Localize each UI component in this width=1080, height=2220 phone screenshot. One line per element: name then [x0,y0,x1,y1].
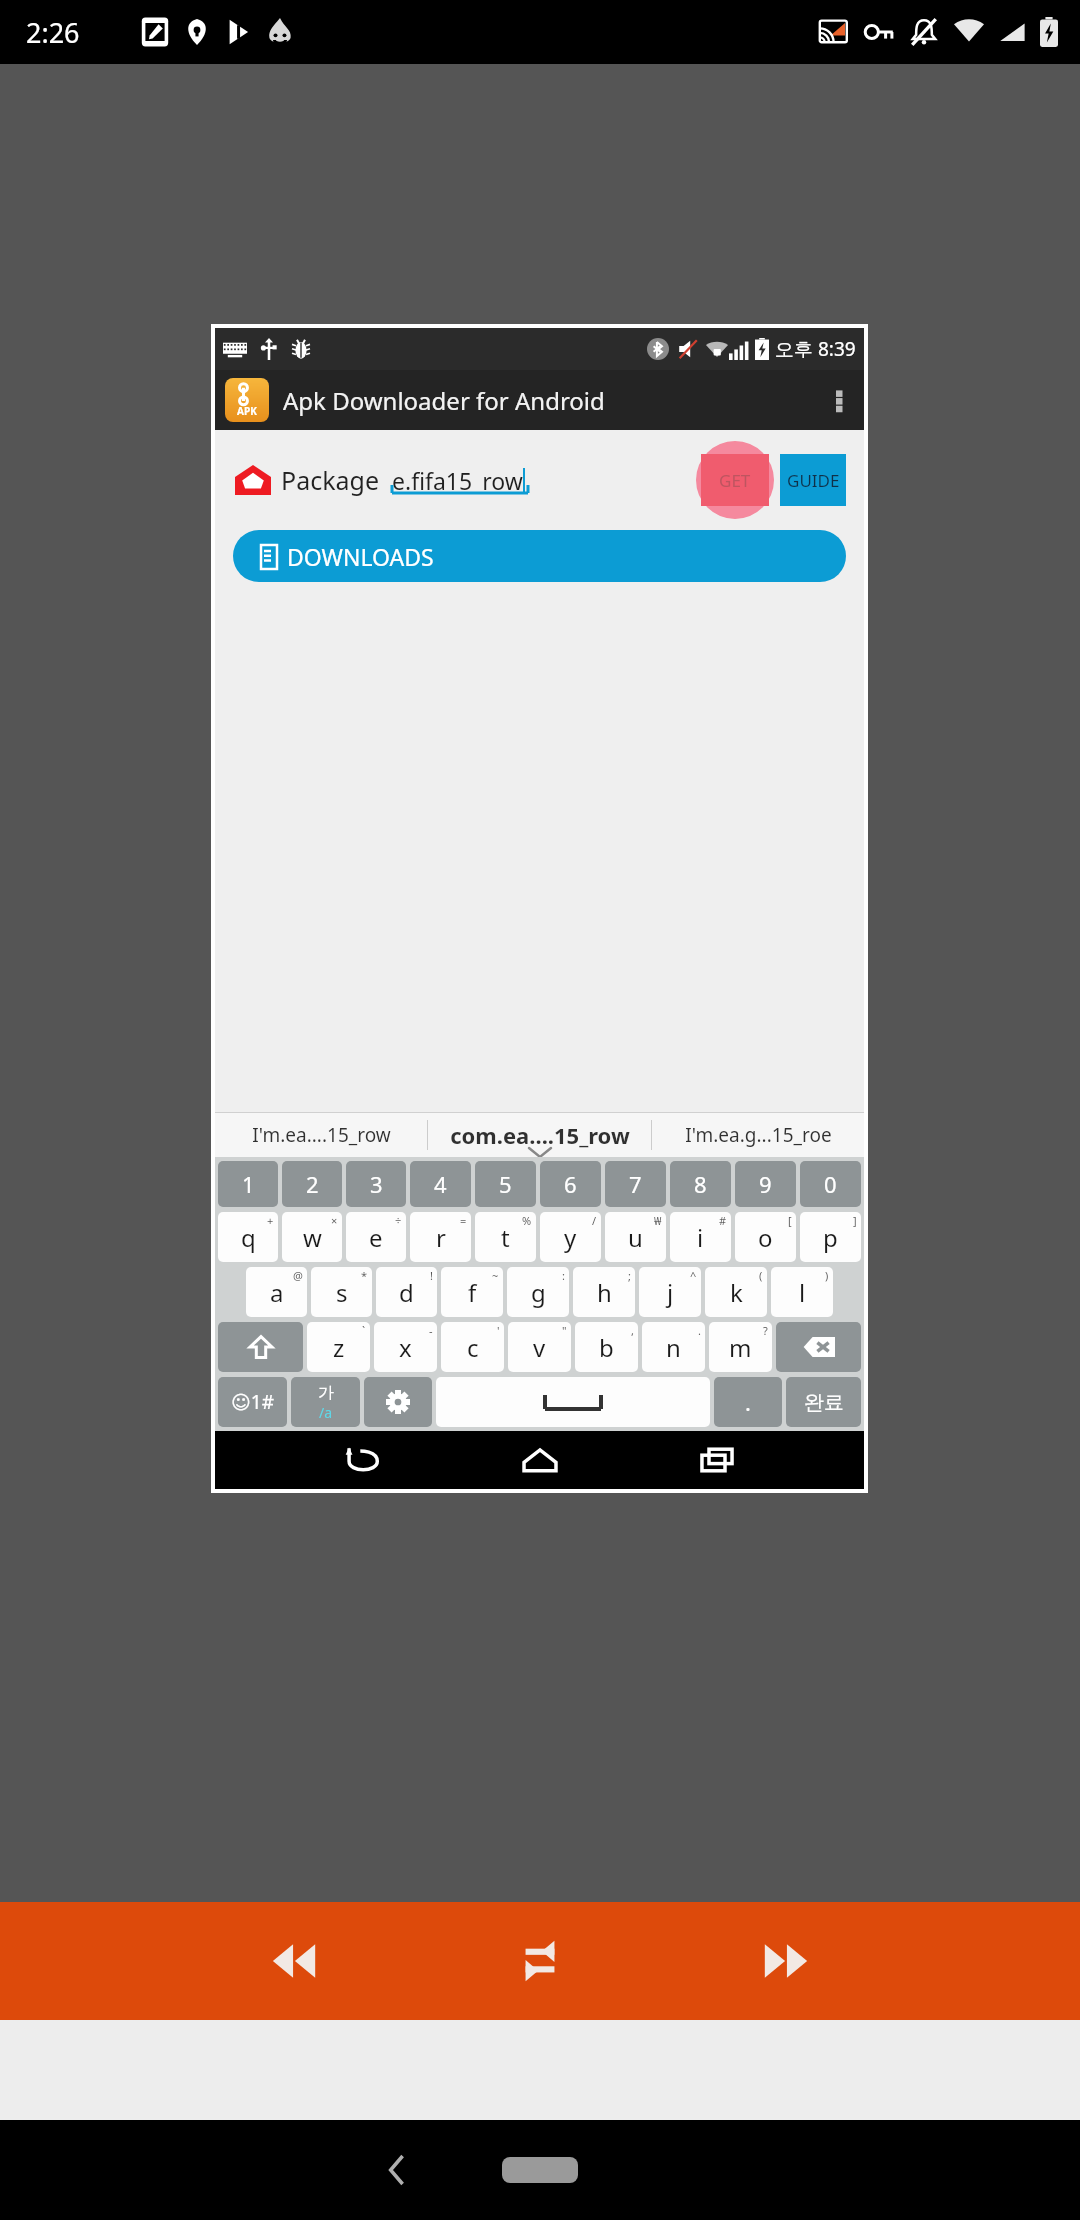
button[interactable]: y [540,1212,601,1262]
button[interactable]: j [639,1267,701,1317]
button[interactable]: 4 [410,1161,471,1207]
button[interactable]: v [508,1322,571,1372]
button[interactable]: g [507,1267,569,1317]
button[interactable]: e [346,1212,406,1262]
button[interactable]: Space [436,1377,710,1427]
button[interactable]: z [307,1322,370,1372]
button[interactable]: GUIDE [780,454,846,506]
button[interactable]: Next [741,1916,831,2006]
staticText: x [399,1331,412,1364]
staticText: 5 [499,1169,512,1199]
button[interactable]: s [311,1267,372,1317]
button[interactable]: Backspace [776,1322,861,1372]
staticText: 4 [434,1169,447,1199]
button[interactable]: com.ea....15_row [428,1113,651,1157]
button[interactable]: 완료 [786,1377,861,1427]
button[interactable]: h [573,1267,635,1317]
button[interactable]: Home [502,2157,578,2183]
staticText: + [267,1213,274,1228]
staticText: s [336,1276,348,1309]
staticText: 오후 8:39 [775,336,856,362]
button[interactable]: x [374,1322,437,1372]
button[interactable]: Repeat [495,1916,585,2006]
staticText: z [333,1331,345,1364]
button[interactable]: a [246,1267,307,1317]
button[interactable]: w [282,1212,342,1262]
button[interactable]: I'm.ea.g...15_roe [652,1113,864,1157]
button[interactable]: i [670,1212,731,1262]
button[interactable]: DOWNLOADS [233,530,846,582]
staticText: h [597,1276,612,1309]
button[interactable]: q [218,1212,278,1262]
button[interactable]: l [771,1267,833,1317]
staticText: ( [759,1268,763,1283]
button[interactable]: 0 [800,1161,861,1207]
staticText: 7 [629,1169,642,1199]
staticText: ' [497,1323,500,1338]
button[interactable]: n [642,1322,705,1372]
staticText: 6 [564,1169,577,1199]
staticText: 3 [370,1169,383,1199]
staticText: c [467,1331,479,1364]
staticText: × [331,1213,338,1228]
button[interactable]: f [441,1267,503,1317]
staticText: ÷ [395,1213,402,1228]
staticText: ? [763,1323,768,1338]
staticText: t [501,1221,510,1254]
button[interactable]: Back [332,1431,392,1489]
button[interactable]: 3 [346,1161,406,1207]
button[interactable]: Recents [687,1431,747,1489]
staticText: n [666,1331,681,1364]
button[interactable]: 2 [282,1161,342,1207]
staticText: @ [293,1268,303,1283]
button[interactable] [364,1377,432,1427]
button[interactable]: o [735,1212,796,1262]
staticText: - [429,1323,433,1338]
staticText: 가 [318,1383,334,1403]
button[interactable]: More options [824,376,854,424]
button[interactable]: 가 [291,1377,360,1427]
button[interactable]: u [605,1212,666,1262]
button[interactable]: 6 [540,1161,601,1207]
button[interactable]: m [709,1322,772,1372]
staticText: ! [430,1268,433,1283]
button[interactable]: 1 [218,1161,278,1207]
button[interactable]: b [575,1322,638,1372]
button[interactable]: r [410,1212,471,1262]
staticText: g [531,1276,546,1309]
staticText: I'm.ea.g...15_roe [685,1122,832,1148]
button[interactable]: I'm.ea....15_row [215,1113,427,1157]
button[interactable]: Previous [249,1916,339,2006]
button[interactable]: GET [701,454,769,506]
button[interactable]: p [800,1212,861,1262]
button[interactable]: ☺1# [218,1377,287,1427]
button[interactable]: 7 [605,1161,666,1207]
staticText: GET [719,469,751,492]
staticText: ~ [492,1268,499,1283]
staticText: Package [281,463,380,497]
button[interactable]: Back [369,2142,425,2198]
staticText: : [562,1268,565,1283]
button[interactable]: Home [510,1431,570,1489]
button[interactable]: 9 [735,1161,796,1207]
staticText: , [631,1323,634,1338]
button[interactable]: d [376,1267,437,1317]
staticText: ` [362,1323,366,1338]
staticText: ₩ [654,1213,662,1228]
staticText: q [241,1221,256,1254]
staticText: u [628,1221,643,1254]
button[interactable]: App icon [225,378,269,422]
button[interactable]: k [705,1267,767,1317]
staticText: i [697,1221,704,1254]
staticText: f [468,1276,477,1309]
button[interactable]: Shift [218,1322,303,1372]
staticText: = [460,1213,467,1228]
staticText: l [799,1276,806,1309]
staticText: j [667,1276,674,1309]
button[interactable]: t [475,1212,536,1262]
button[interactable]: 8 [670,1161,731,1207]
button[interactable]: 5 [475,1161,536,1207]
button[interactable]: c [441,1322,504,1372]
staticText: # [719,1213,727,1228]
button[interactable]: . [714,1377,782,1427]
